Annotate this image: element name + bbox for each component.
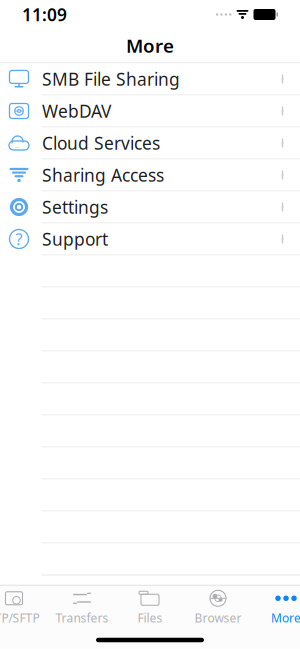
button[interactable]: FTP/SFTP <box>0 588 44 628</box>
button[interactable]: Cloud Services <box>0 127 300 159</box>
button[interactable]: More <box>256 588 300 628</box>
button[interactable]: SMB File Sharing <box>0 63 300 95</box>
staticText: Cloud Services <box>42 131 160 154</box>
staticText: FTP/SFTP <box>0 610 39 626</box>
staticText: 11:09 <box>22 3 67 26</box>
staticText: Settings <box>42 195 108 218</box>
staticText: More <box>271 610 300 626</box>
staticText: Files <box>137 610 162 626</box>
staticText: WebDAV <box>42 99 111 122</box>
staticText: Sharing Access <box>42 163 164 186</box>
button[interactable]: Files <box>120 588 180 628</box>
button[interactable]: Browser <box>188 588 248 628</box>
button[interactable]: Sharing Access <box>0 159 300 191</box>
staticText: ? <box>15 228 22 250</box>
staticText: Browser <box>194 610 241 626</box>
staticText: Support <box>42 227 108 250</box>
button[interactable]: WebDAV <box>0 95 300 127</box>
button[interactable]: ? <box>0 223 300 255</box>
button[interactable]: Settings <box>0 191 300 223</box>
staticText: Transfers <box>55 610 108 626</box>
button[interactable]: Transfers <box>52 588 112 628</box>
staticText: SMB File Sharing <box>42 67 180 90</box>
staticText: More <box>126 33 174 58</box>
